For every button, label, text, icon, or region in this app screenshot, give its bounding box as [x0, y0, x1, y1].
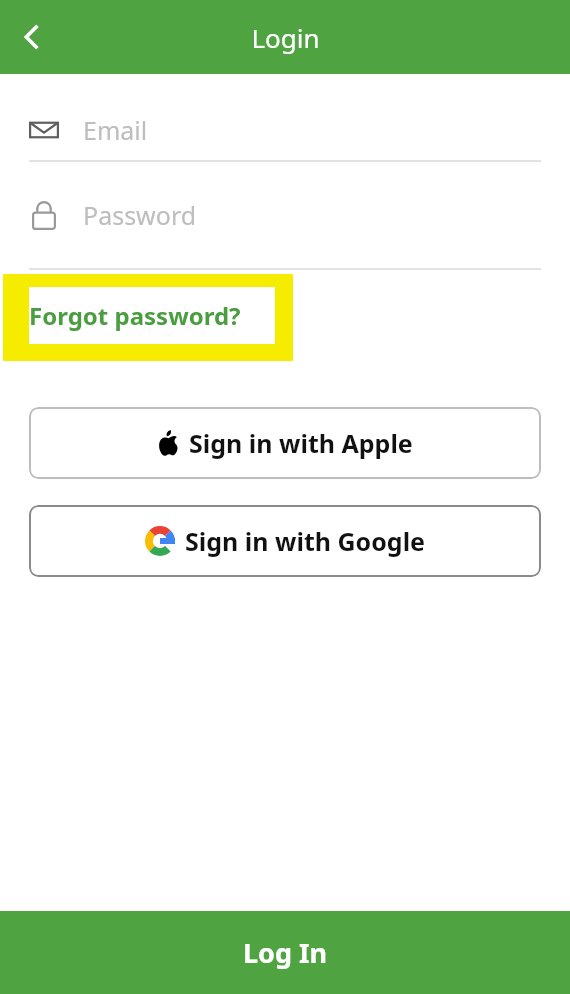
staticText: Password	[83, 198, 197, 232]
button[interactable]: Password	[29, 162, 541, 268]
button[interactable]: Email	[29, 100, 541, 160]
staticText: Sign in with Google	[185, 524, 426, 558]
staticText: Login	[251, 20, 320, 55]
button[interactable]: Sign in with Google	[29, 505, 541, 577]
staticText: Sign in with Apple	[189, 426, 413, 460]
staticText: Forgot password?	[29, 299, 241, 332]
staticText: Log In	[243, 934, 328, 971]
staticText: Email	[83, 113, 148, 147]
button[interactable]: Back	[4, 9, 60, 65]
button[interactable]: Sign in with Apple	[29, 407, 541, 479]
button[interactable]: Log In	[0, 911, 570, 994]
button[interactable]: Forgot password?	[29, 287, 275, 344]
